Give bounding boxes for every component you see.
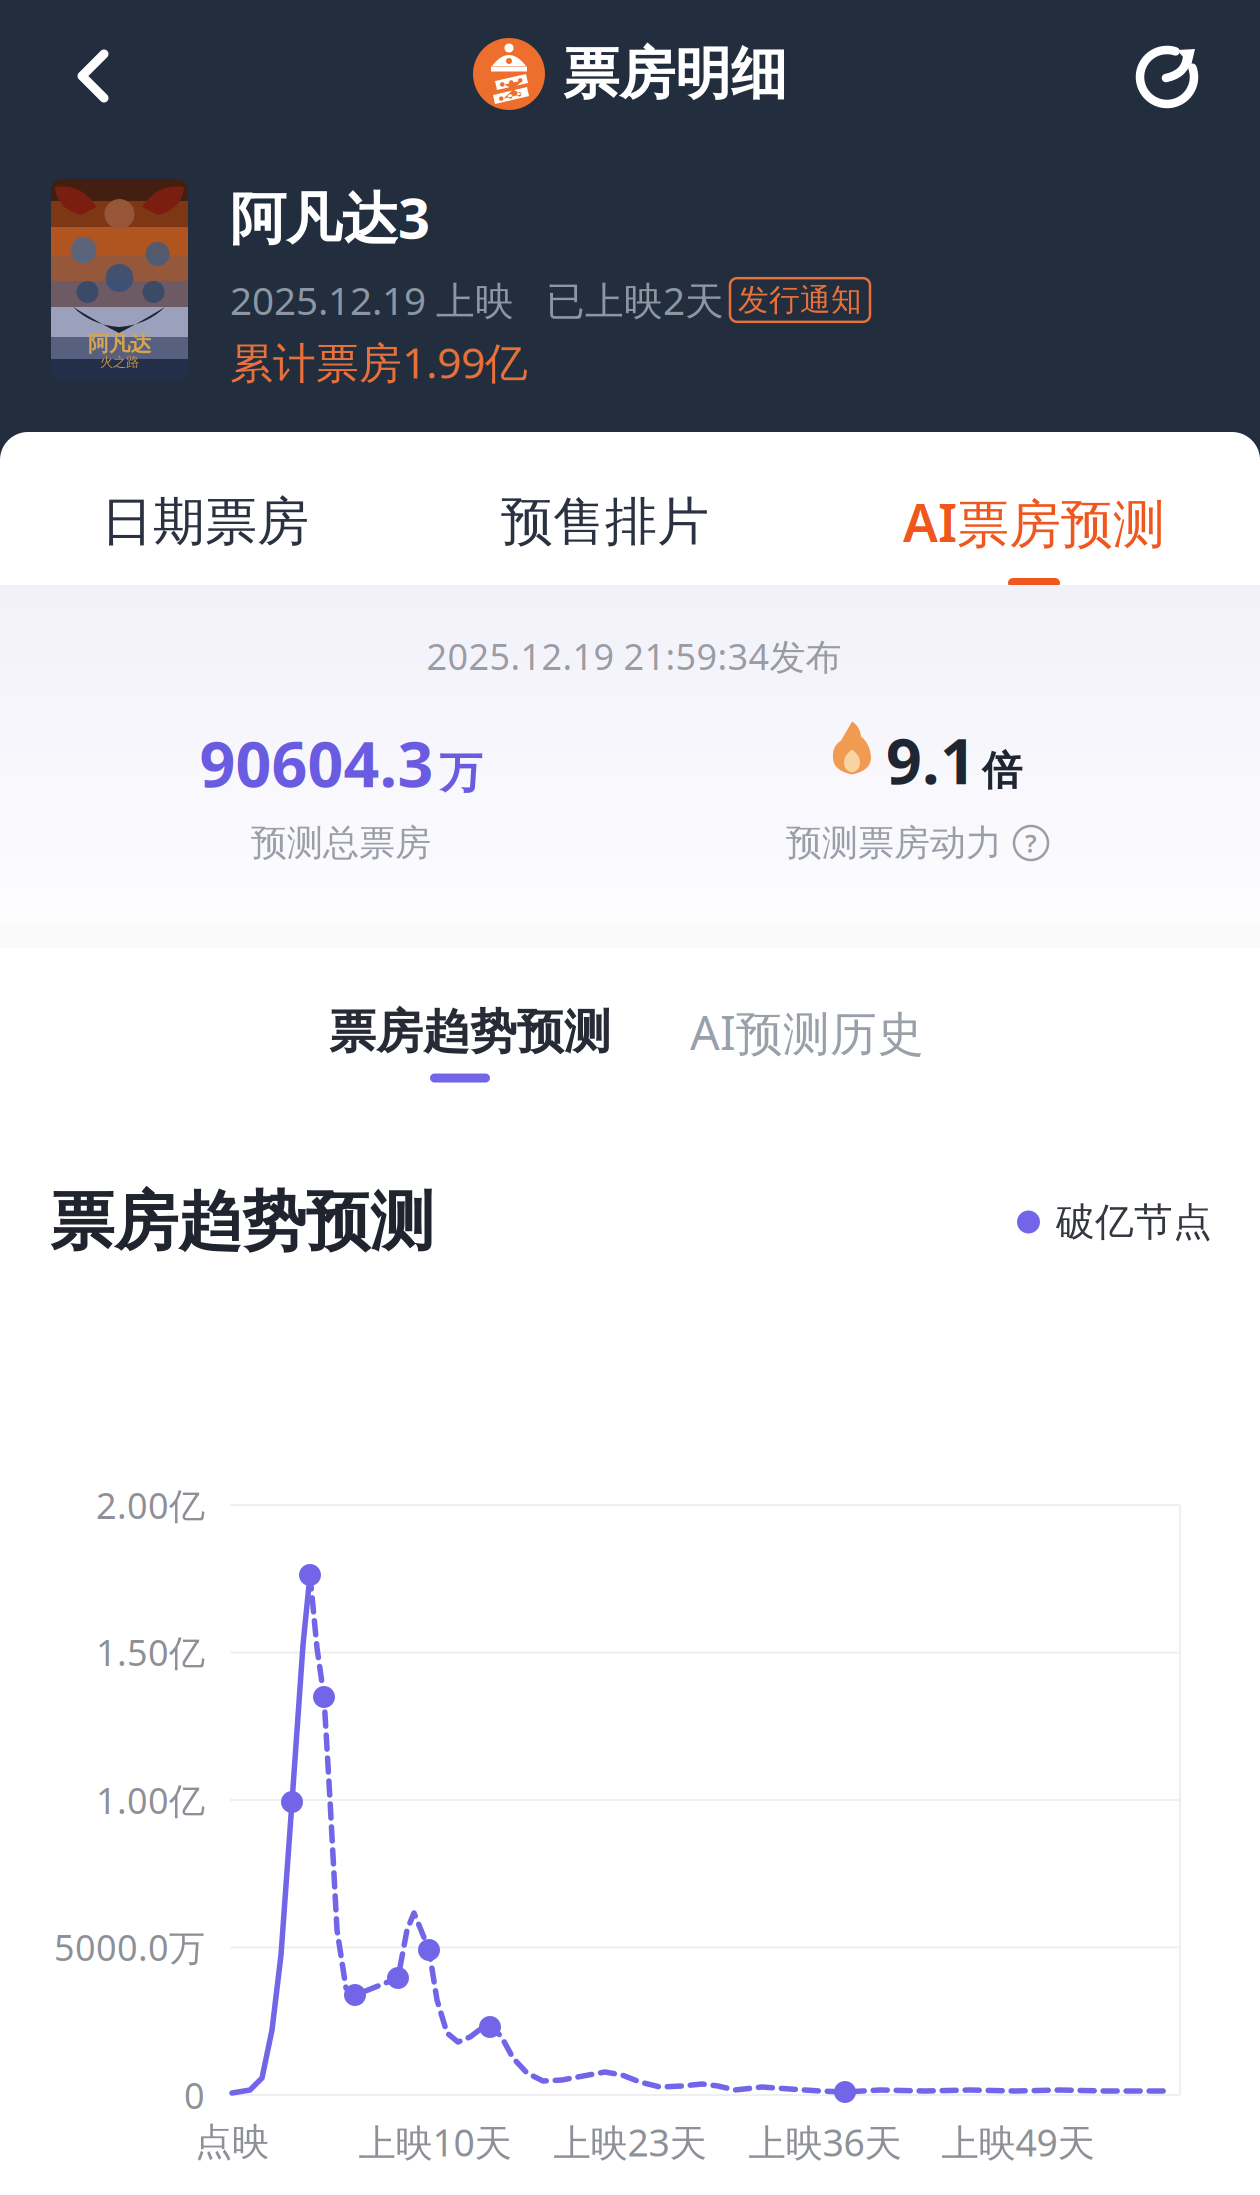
- staticText: 火之路: [100, 354, 139, 370]
- button[interactable]: 返回: [46, 30, 140, 122]
- staticText: 累计票房1.99亿: [230, 334, 528, 390]
- staticText: 1.00亿: [96, 1776, 205, 1824]
- staticText: 2.00亿: [96, 1481, 205, 1529]
- staticText: 9.1: [886, 718, 976, 802]
- staticText: 已上映2天: [546, 274, 724, 326]
- staticText: 破亿节点: [1056, 1198, 1212, 1246]
- staticText: 2025.12.19 上映: [230, 274, 514, 326]
- button[interactable]: 刷新: [1130, 36, 1206, 112]
- staticText: 日期票房: [101, 490, 309, 554]
- staticText: 阿凡达: [88, 331, 151, 357]
- staticText: 5000.0万: [54, 1923, 205, 1971]
- staticText: 上映23天: [553, 2117, 706, 2167]
- staticText: 票房趋势预测: [329, 1003, 611, 1061]
- staticText: 预售排片: [501, 490, 709, 554]
- staticText: 1.50亿: [96, 1628, 205, 1676]
- staticText: 上映49天: [941, 2117, 1094, 2167]
- staticText: 票房趋势预测: [50, 1183, 434, 1261]
- staticText: 2025.12.19 21:59:34发布: [426, 632, 841, 680]
- staticText: 0: [184, 2071, 205, 2119]
- staticText: AI预测历史: [690, 1001, 924, 1063]
- button[interactable]: AI预测历史: [690, 991, 924, 1073]
- staticText: 预测总票房: [251, 821, 431, 865]
- button[interactable]: 预售排片: [493, 470, 717, 574]
- staticText: 上映10天: [358, 2117, 511, 2167]
- staticText: 阿凡达3: [230, 180, 430, 254]
- button[interactable]: 日期票房: [93, 470, 317, 574]
- staticText: ?: [1025, 826, 1037, 860]
- staticText: 发行通知: [738, 281, 862, 319]
- button[interactable]: AI票房预测: [895, 467, 1173, 577]
- staticText: 点映: [195, 2119, 269, 2165]
- staticText: AI票房预测: [903, 487, 1165, 557]
- staticText: 预测票房动力: [786, 821, 1002, 865]
- staticText: 上映36天: [748, 2117, 901, 2167]
- staticText: 90604.3: [199, 721, 433, 805]
- button[interactable]: 说明: [1014, 826, 1048, 860]
- button[interactable]: 票房趋势预测: [329, 993, 611, 1071]
- staticText: 万: [439, 747, 482, 799]
- staticText: 倍: [982, 746, 1022, 795]
- staticText: 票房明细: [563, 40, 787, 108]
